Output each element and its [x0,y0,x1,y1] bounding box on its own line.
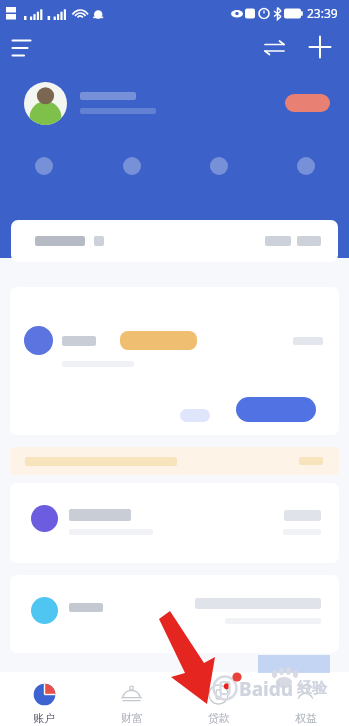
button[interactable] [236,397,316,422]
staticText: 经验 [297,679,327,698]
staticText: 23:39 [307,5,338,21]
staticText: 财富 [121,711,143,725]
button[interactable]: Profile avatar [24,82,67,125]
staticText: Baidu [239,676,294,702]
button[interactable]: 权益 [262,672,349,726]
button[interactable] [10,575,339,653]
button[interactable] [10,447,339,475]
button[interactable] [180,409,210,422]
staticText: 账户 [33,711,55,725]
button[interactable] [11,220,338,262]
button[interactable]: Upgrade [285,94,330,112]
button[interactable] [10,287,339,435]
staticText: 权益 [295,711,317,725]
staticText: 贷款 [208,711,230,725]
button[interactable]: 贷款 [175,672,262,726]
button[interactable]: Quick action [175,138,262,194]
button[interactable]: 财富 [88,672,175,726]
button[interactable]: Menu [3,29,39,65]
button[interactable]: Quick action [262,138,349,194]
button[interactable] [10,483,339,563]
button[interactable]: Quick action [88,138,175,194]
button[interactable]: Add [300,27,340,67]
button[interactable]: Transfer [254,27,294,67]
button[interactable]: 账户 [0,672,88,726]
button[interactable]: Quick action [0,138,88,194]
